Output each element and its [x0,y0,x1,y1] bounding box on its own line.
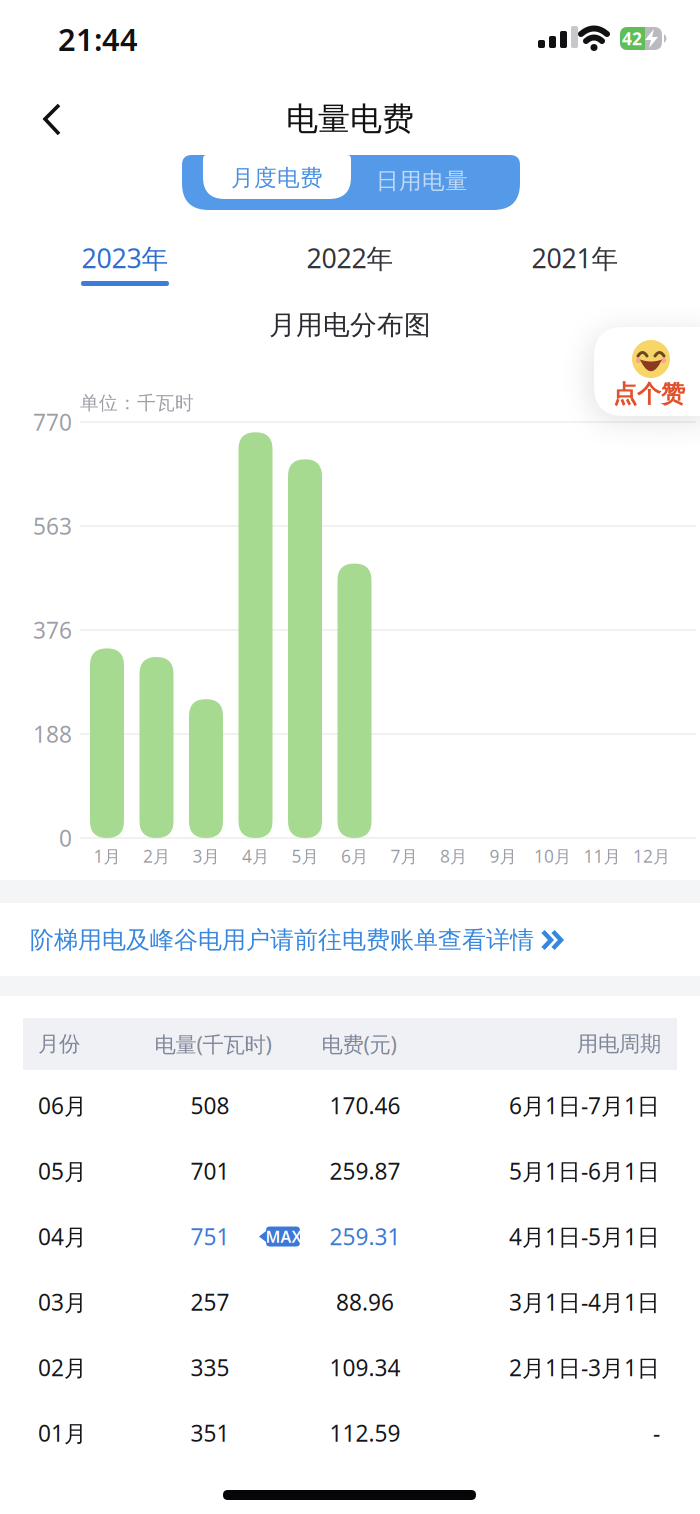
staticText: 8月 [440,844,467,867]
button[interactable]: 日用电量 [342,155,502,207]
staticText: 阶梯用电及峰谷电用户请前往电费账单查看详情 [30,925,534,955]
staticText: 188 [33,719,72,749]
staticText: 2月1日-3月1日 [509,1352,660,1382]
staticText: 04月 [38,1221,87,1251]
staticText: 7月 [390,844,417,867]
staticText: 3月 [192,844,219,867]
staticText: 6月1日-7月1日 [509,1090,660,1120]
staticText: 03月 [38,1287,87,1317]
staticText: 701 [190,1156,229,1186]
staticText: 42 [622,27,642,50]
button[interactable]: 月度电费 [203,156,351,200]
staticText: 电量电费 [286,99,414,139]
staticText: 日用电量 [376,167,468,195]
staticText: 电量(千瓦时) [154,1030,271,1058]
button[interactable]: Back [0,66,100,136]
staticText: 109.34 [329,1352,400,1382]
staticText: 月份 [38,1031,80,1057]
staticText: - [653,1418,660,1448]
button[interactable]: 2023年 [50,234,200,282]
staticText: 4月 [242,844,269,867]
staticText: 88.96 [336,1287,394,1317]
staticText: MAX [265,1226,301,1247]
button[interactable]: 2022年 [275,234,425,282]
staticText: 4月1日-5月1日 [509,1221,660,1251]
staticText: 2023年 [81,240,168,276]
staticText: 05月 [38,1156,87,1186]
staticText: 376 [33,615,72,645]
button[interactable]: 点个赞 [594,327,700,416]
staticText: 3月1日-4月1日 [509,1287,660,1317]
staticText: 用电周期 [577,1031,661,1057]
staticText: 单位：千瓦时 [80,391,194,414]
staticText: 9月 [489,844,516,867]
staticText: 563 [33,511,72,541]
staticText: 1月 [93,844,120,867]
staticText: 259.87 [329,1156,400,1186]
staticText: 770 [33,407,72,437]
staticText: 月度电费 [231,164,323,192]
staticText: 2021年 [531,240,618,276]
staticText: 21:44 [58,19,138,59]
staticText: 01月 [38,1418,87,1448]
button[interactable]: 2021年 [500,234,650,282]
staticText: 508 [190,1090,229,1120]
staticText: 12月 [633,844,670,867]
staticText: 0 [59,823,72,853]
staticText: 10月 [534,844,571,867]
staticText: 月用电分布图 [269,309,431,341]
staticText: 751 [190,1221,229,1251]
staticText: 5月 [291,844,318,867]
staticText: 2月 [143,844,170,867]
staticText: 06月 [38,1090,87,1120]
staticText: 335 [190,1352,229,1382]
staticText: 2022年 [306,240,393,276]
staticText: 6月 [341,844,368,867]
staticText: 点个赞 [613,379,685,409]
staticText: 259.31 [329,1221,400,1251]
staticText: 11月 [583,844,620,867]
staticText: 5月1日-6月1日 [509,1156,660,1186]
staticText: 257 [190,1287,229,1317]
staticText: 112.59 [329,1418,400,1448]
staticText: 02月 [38,1352,87,1382]
staticText: 351 [190,1418,229,1448]
staticText: 170.46 [329,1090,400,1120]
button[interactable]: 阶梯用电及峰谷电用户请前往电费账单查看详情 [30,918,670,962]
staticText: 电费(元) [321,1030,396,1058]
